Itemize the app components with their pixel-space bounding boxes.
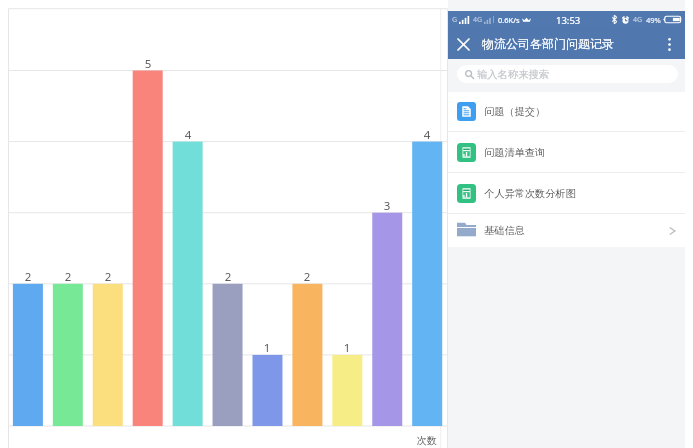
staticText: 2 [16, 269, 40, 285]
staticText: 物流公司各部门问题记录 [482, 36, 614, 51]
staticText: 0.6K/s [498, 15, 520, 25]
staticText: 个人异常次数分析图 [484, 187, 576, 200]
button[interactable]: 问题（提交） [448, 92, 685, 131]
staticText: 2 [216, 269, 240, 285]
staticText: 2 [96, 269, 120, 285]
staticText: 4 [415, 127, 439, 143]
staticText: G [452, 15, 458, 25]
button[interactable]: Close [451, 32, 475, 56]
staticText: 4G [473, 15, 483, 25]
staticText: 次数 [417, 434, 437, 447]
staticText: 基础信息 [484, 224, 525, 237]
button[interactable]: 输入名称来搜索 [457, 65, 678, 83]
button[interactable]: 个人异常次数分析图 [448, 173, 685, 213]
staticText: 49% [646, 15, 661, 25]
staticText: 1 [335, 340, 359, 356]
button[interactable]: 问题清单查询 [448, 132, 685, 172]
staticText: 5 [136, 56, 160, 72]
staticText: 2 [56, 269, 80, 285]
staticText: 输入名称来搜索 [477, 68, 550, 81]
staticText: 问题清单查询 [484, 146, 546, 159]
button[interactable]: 基础信息 [448, 214, 685, 247]
staticText: 4G [633, 15, 643, 25]
staticText: 1 [255, 340, 279, 356]
staticText: 2 [295, 269, 319, 285]
staticText: 问题（提交） [484, 105, 546, 118]
staticText: 3 [375, 198, 399, 214]
button[interactable]: More options [657, 32, 681, 56]
staticText: 4 [176, 127, 200, 143]
staticText: 13:53 [556, 14, 581, 27]
